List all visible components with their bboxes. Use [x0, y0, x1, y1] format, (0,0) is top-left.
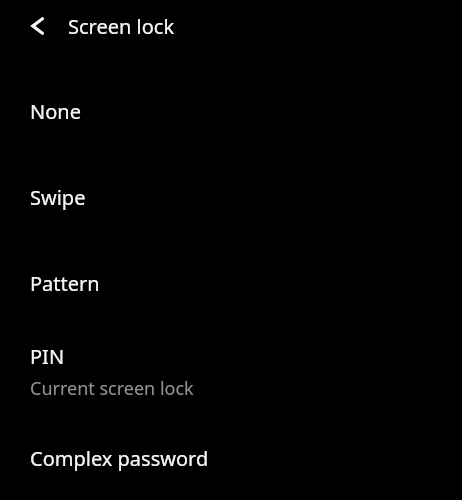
button[interactable]: PIN	[0, 326, 462, 417]
staticText: Screen lock	[68, 13, 175, 40]
staticText: Swipe	[30, 184, 86, 211]
staticText: Pattern	[30, 270, 100, 297]
button[interactable]: Pattern	[0, 240, 462, 326]
button[interactable]	[13, 2, 61, 50]
staticText: Current screen lock	[30, 376, 194, 401]
button[interactable]: Complex password	[0, 417, 462, 500]
button[interactable]: Swipe	[0, 154, 462, 240]
button[interactable]: None	[0, 68, 462, 154]
staticText: Complex password	[30, 445, 209, 472]
staticText: PIN	[30, 343, 65, 370]
staticText: None	[30, 98, 81, 125]
